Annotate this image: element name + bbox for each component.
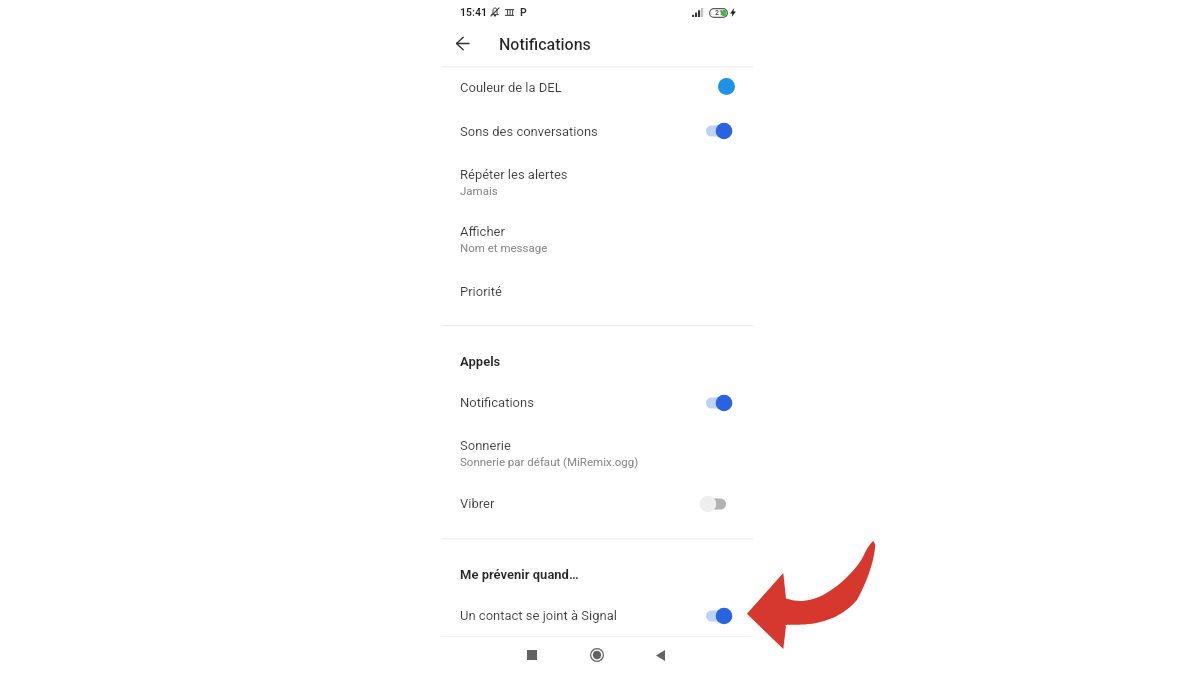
button[interactable]: Conversation sounds <box>703 119 741 143</box>
staticText: Jamais <box>460 184 498 197</box>
button[interactable]: Back <box>646 641 674 669</box>
staticText: Sonnerie par défaut (MiRemix.ogg) <box>460 455 639 468</box>
other: Notifications silenced <box>490 7 500 17</box>
staticText: 21 <box>715 9 724 17</box>
button[interactable]: Vibrate <box>697 492 735 516</box>
button[interactable] <box>441 119 753 145</box>
button[interactable]: Back <box>448 29 477 58</box>
button[interactable]: LED colour <box>718 78 735 95</box>
staticText: Appels <box>460 354 501 369</box>
staticText: Nom et message <box>460 241 548 254</box>
staticText: 15:41 <box>460 6 488 18</box>
staticText: P <box>520 6 527 18</box>
staticText: Notifications <box>499 35 591 54</box>
staticText: Afficher <box>460 224 505 239</box>
button[interactable]: Recents <box>518 641 546 669</box>
button[interactable] <box>441 75 753 101</box>
staticText: Un contact se joint à Signal <box>460 608 617 623</box>
button[interactable] <box>441 434 753 460</box>
staticText: Sonnerie <box>460 438 511 453</box>
staticText: Répéter les alertes <box>460 167 568 182</box>
button[interactable] <box>441 390 753 416</box>
button[interactable] <box>441 162 753 188</box>
button[interactable] <box>441 219 753 245</box>
button[interactable]: Call notifications <box>703 391 741 415</box>
staticText: Priorité <box>460 284 502 299</box>
staticText: Vibrer <box>460 496 495 511</box>
staticText: Sons des conversations <box>460 124 598 139</box>
button[interactable]: Contact joins Signal <box>703 604 741 628</box>
button[interactable] <box>441 492 753 518</box>
button[interactable]: Home <box>583 641 611 669</box>
staticText: Couleur de la DEL <box>460 80 562 95</box>
button[interactable] <box>441 279 753 305</box>
button[interactable] <box>441 603 753 629</box>
staticText: Notifications <box>460 395 534 410</box>
staticText: Me prévenir quand… <box>460 567 579 582</box>
